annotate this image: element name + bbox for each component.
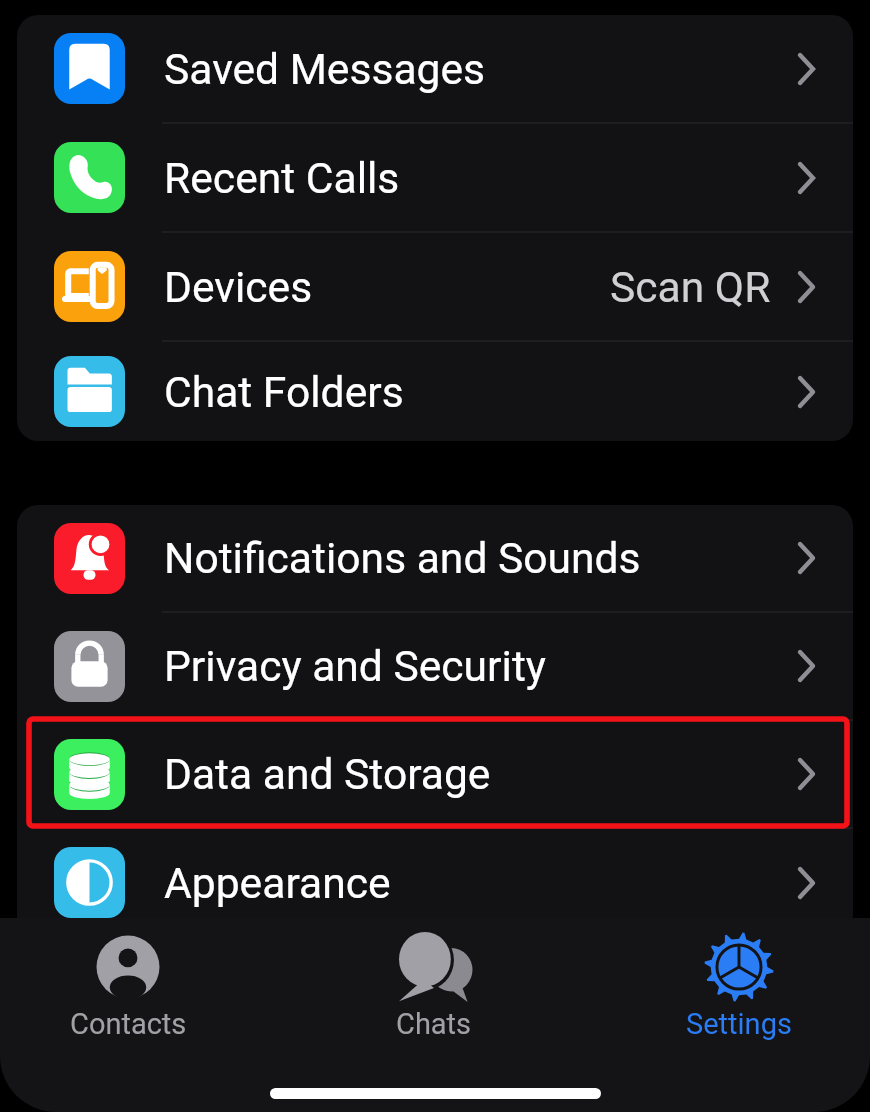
button[interactable]: Chat Folders [17,342,853,441]
button[interactable]: Contacts [3,918,253,1058]
staticText: Saved Messages [164,44,486,94]
other: Settings [704,932,774,1002]
button[interactable]: Notifications and Sounds [17,505,853,611]
other: Chats [399,932,469,1002]
staticText: Data and Storage [164,749,491,799]
button[interactable]: Settings [614,918,864,1058]
button[interactable]: Appearance [17,829,853,936]
staticText: Notifications and Sounds [164,533,641,583]
staticText: Chat Folders [164,367,404,417]
button[interactable]: Chats [309,918,559,1058]
staticText: Contacts [70,1007,187,1041]
staticText: Appearance [164,858,391,908]
staticText: Privacy and Security [164,641,546,691]
staticText: Scan QR [610,262,771,312]
staticText: Devices [164,262,313,312]
button[interactable]: Devices [17,233,853,340]
button[interactable]: Recent Calls [17,124,853,231]
button[interactable]: Privacy and Security [17,613,853,719]
staticText: Settings [686,1007,792,1041]
button[interactable]: Saved Messages [17,15,853,122]
button[interactable]: Data and Storage [17,721,853,827]
staticText: Chats [396,1007,472,1041]
staticText: Recent Calls [164,153,400,203]
other: Contacts [93,932,163,1002]
